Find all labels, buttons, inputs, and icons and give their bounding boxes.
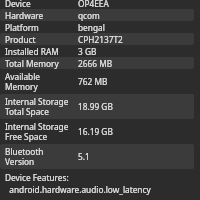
staticText: 18.99 GB bbox=[78, 101, 113, 112]
staticText: qcom bbox=[78, 10, 100, 21]
staticText: Product bbox=[5, 34, 36, 45]
button[interactable]: Installed RAM bbox=[0, 45, 194, 57]
staticText: 762 MB bbox=[78, 76, 108, 87]
staticText: 16.19 GB bbox=[78, 126, 113, 137]
staticText: Installed RAM bbox=[5, 46, 59, 57]
button[interactable]: Device bbox=[0, 0, 194, 9]
button[interactable]: Available Memory bbox=[0, 69, 194, 94]
staticText: bengal bbox=[78, 22, 105, 33]
staticText: android.hardware.audio.low_latency bbox=[5, 184, 151, 195]
staticText: Internal Storage Total Space bbox=[5, 96, 69, 118]
button[interactable]: Platform bbox=[0, 21, 194, 33]
staticText: 5.1 bbox=[78, 151, 90, 162]
staticText: Bluetooth Version bbox=[5, 146, 44, 168]
staticText: Device Features: bbox=[5, 172, 69, 183]
staticText: 2666 MB bbox=[78, 58, 113, 69]
button[interactable]: Bluetooth Version bbox=[0, 144, 194, 169]
staticText: Device bbox=[5, 0, 31, 9]
button[interactable]: Internal Storage Free Space bbox=[0, 119, 194, 144]
staticText: Platform bbox=[5, 22, 39, 33]
button[interactable]: Hardware bbox=[0, 9, 194, 21]
button[interactable]: Device Features: bbox=[0, 169, 194, 195]
staticText: Hardware bbox=[5, 10, 44, 21]
staticText: Available Memory bbox=[5, 71, 41, 93]
staticText: 3 GB bbox=[78, 46, 97, 57]
staticText: OP4EEA bbox=[78, 0, 109, 9]
staticText: Total Memory bbox=[5, 58, 59, 69]
button[interactable]: Total Memory bbox=[0, 57, 194, 69]
button[interactable]: Product bbox=[0, 33, 194, 45]
staticText: CPH2137T2 bbox=[78, 34, 123, 45]
staticText: Internal Storage Free Space bbox=[5, 121, 69, 143]
button[interactable]: Internal Storage Total Space bbox=[0, 94, 194, 119]
